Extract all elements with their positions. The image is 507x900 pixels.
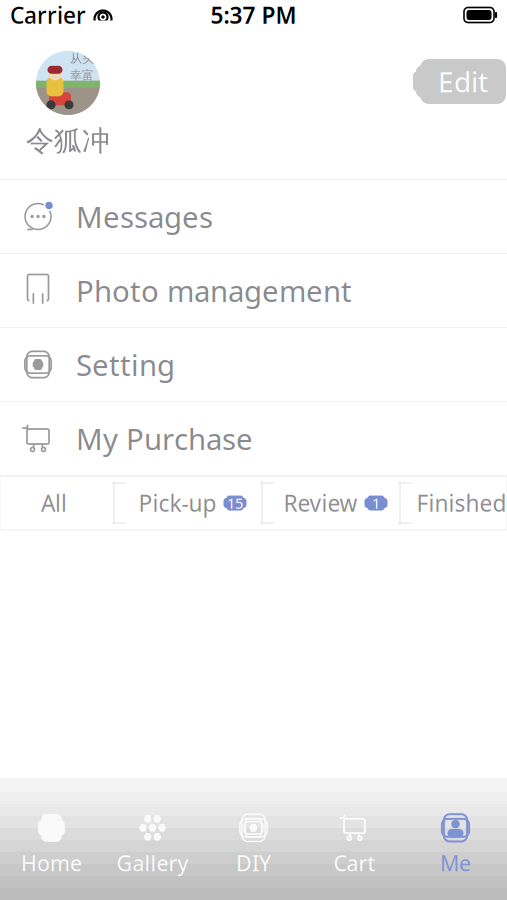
staticText: Photo management (76, 271, 352, 310)
staticText: 令狐冲 (26, 124, 110, 158)
button[interactable]: Me (405, 784, 506, 900)
button[interactable]: Finished (416, 476, 507, 530)
button[interactable]: Photo management (0, 254, 507, 328)
button[interactable]: Profile photo (36, 51, 100, 115)
staticText: 幸富 (70, 68, 94, 82)
staticText: 15 (227, 493, 243, 513)
button[interactable]: My Purchase (0, 402, 507, 476)
staticText: Finished (416, 488, 506, 518)
staticText: Setting (76, 345, 175, 384)
button[interactable]: Cart (304, 784, 405, 900)
button[interactable]: DIY (203, 784, 304, 900)
staticText: DIY (236, 849, 271, 877)
staticText: Review (283, 488, 357, 518)
button[interactable]: Setting (0, 328, 507, 402)
staticText: Carrier (10, 0, 86, 30)
button[interactable]: Messages (0, 180, 507, 254)
staticText: Home (21, 849, 82, 877)
staticText: 1 (372, 493, 380, 513)
button[interactable]: Review (278, 476, 394, 530)
button[interactable]: Gallery (102, 784, 203, 900)
button[interactable]: All (0, 476, 108, 530)
staticText: Gallery (116, 849, 188, 877)
button[interactable]: Pick-up (130, 476, 256, 530)
button[interactable]: Home (1, 784, 102, 900)
staticText: 5:37 PM (210, 0, 296, 30)
staticText: 从头 (70, 51, 94, 66)
staticText: Edit (438, 63, 488, 100)
staticText: Messages (76, 197, 213, 236)
staticText: All (41, 488, 67, 518)
staticText: Pick-up (138, 488, 216, 518)
staticText: Me (440, 849, 471, 877)
staticText: Cart (333, 849, 375, 877)
staticText: My Purchase (76, 419, 253, 458)
button[interactable]: Edit (403, 59, 507, 104)
